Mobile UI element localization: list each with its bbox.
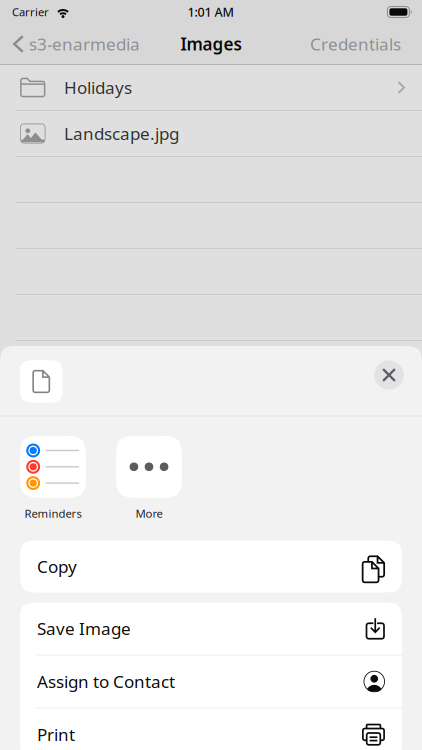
staticText: Print	[37, 723, 75, 746]
staticText: Images	[180, 32, 241, 56]
button[interactable]: Close	[367, 357, 411, 401]
staticText: Holidays	[64, 76, 132, 99]
staticText: Credentials	[310, 32, 401, 56]
staticText: Reminders	[24, 506, 81, 521]
staticText: Save Image	[37, 617, 131, 640]
staticText: 1:01 AM	[187, 3, 234, 21]
button[interactable]: Save Image	[20, 602, 402, 654]
staticText: Landscape.jpg	[64, 122, 179, 145]
button[interactable]: s3-enarmedia	[0, 24, 150, 64]
button[interactable]: More	[101, 436, 197, 521]
button[interactable]: Print	[20, 708, 402, 750]
staticText: More	[135, 506, 162, 521]
button[interactable]: Landscape.jpg	[0, 111, 422, 157]
staticText: Assign to Contact	[37, 670, 175, 693]
button[interactable]: Credentials	[300, 24, 422, 64]
button[interactable]: Holidays	[0, 65, 422, 111]
staticText: s3-enarmedia	[29, 32, 140, 56]
staticText: Copy	[37, 555, 77, 578]
staticText: Carrier	[12, 4, 49, 20]
button[interactable]: Reminders	[5, 436, 101, 521]
button[interactable]: Assign to Contact	[20, 655, 402, 707]
button[interactable]: Copy	[20, 540, 402, 592]
